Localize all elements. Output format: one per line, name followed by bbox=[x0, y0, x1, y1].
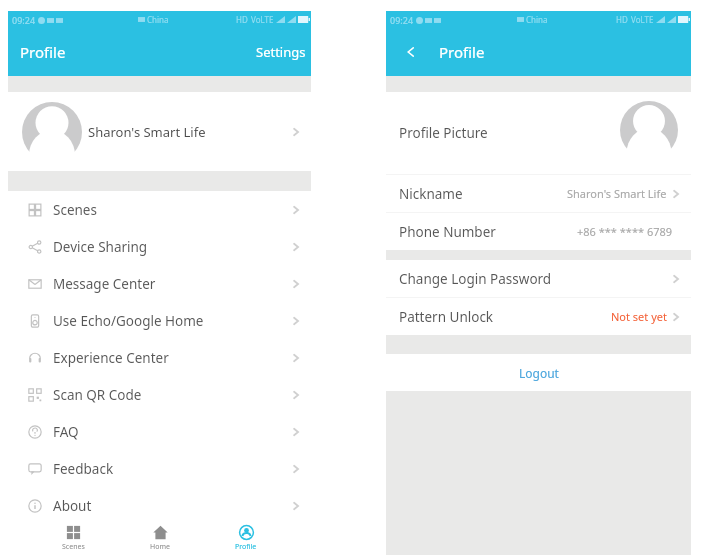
staticText: Nickname bbox=[399, 185, 463, 203]
staticText: About bbox=[53, 497, 92, 515]
staticText: Not set yet bbox=[611, 309, 667, 324]
staticText: HD bbox=[236, 14, 248, 25]
staticText: Change Login Password bbox=[399, 270, 552, 288]
staticText: Message Center bbox=[53, 275, 156, 293]
button[interactable]: Settings bbox=[252, 37, 310, 67]
staticText: VoLTE bbox=[251, 14, 274, 25]
button[interactable]: Scan QR Code bbox=[8, 376, 311, 413]
staticText: Experience Center bbox=[53, 349, 169, 367]
staticText: Use Echo/Google Home bbox=[53, 312, 204, 330]
staticText: Device Sharing bbox=[53, 238, 148, 256]
staticText: HD bbox=[616, 14, 628, 25]
staticText: Scenes bbox=[62, 542, 85, 552]
staticText: VoLTE bbox=[631, 14, 654, 25]
button[interactable]: Feedback bbox=[8, 450, 311, 487]
button[interactable]: FAQ bbox=[8, 413, 311, 450]
staticText: Scan QR Code bbox=[53, 386, 142, 404]
staticText: Scenes bbox=[53, 201, 97, 219]
staticText: Sharon's Smart Life bbox=[567, 186, 667, 201]
button[interactable]: Sharon's Smart Life bbox=[8, 92, 311, 171]
button[interactable]: Scenes bbox=[8, 191, 311, 228]
button[interactable]: Profile bbox=[203, 522, 289, 555]
staticText: Pattern Unlock bbox=[399, 308, 494, 326]
button[interactable]: Phone Number bbox=[386, 213, 691, 250]
staticText: China bbox=[147, 14, 169, 25]
staticText: Profile Picture bbox=[399, 124, 488, 142]
staticText: Phone Number bbox=[399, 223, 496, 241]
staticText: 09:24 bbox=[390, 14, 414, 26]
staticText: +86 *** **** 6789 bbox=[577, 224, 673, 239]
button[interactable]: Logout bbox=[386, 354, 691, 391]
button[interactable]: Change Login Password bbox=[386, 260, 691, 297]
staticText: Settings bbox=[256, 43, 306, 61]
staticText: Home bbox=[150, 542, 170, 552]
staticText: Logout bbox=[519, 365, 559, 381]
button[interactable]: Message Center bbox=[8, 265, 311, 302]
staticText: 09:24 bbox=[12, 14, 36, 26]
staticText: Feedback bbox=[53, 460, 114, 478]
button[interactable]: Back bbox=[400, 41, 422, 63]
button[interactable]: Pattern Unlock bbox=[386, 298, 691, 335]
staticText: Profile bbox=[235, 542, 257, 552]
button[interactable]: Nickname bbox=[386, 175, 691, 212]
button[interactable]: About bbox=[8, 487, 311, 524]
staticText: China bbox=[526, 14, 548, 25]
button[interactable]: Use Echo/Google Home bbox=[8, 302, 311, 339]
button[interactable]: Profile Picture bbox=[386, 92, 691, 174]
button[interactable]: Experience Center bbox=[8, 339, 311, 376]
button[interactable]: Device Sharing bbox=[8, 228, 311, 265]
button[interactable]: Home bbox=[117, 522, 203, 555]
button[interactable]: Scenes bbox=[30, 522, 117, 555]
staticText: Sharon's Smart Life bbox=[88, 123, 206, 141]
staticText: Profile bbox=[439, 42, 485, 62]
staticText: FAQ bbox=[53, 423, 79, 441]
staticText: Profile bbox=[20, 42, 66, 62]
